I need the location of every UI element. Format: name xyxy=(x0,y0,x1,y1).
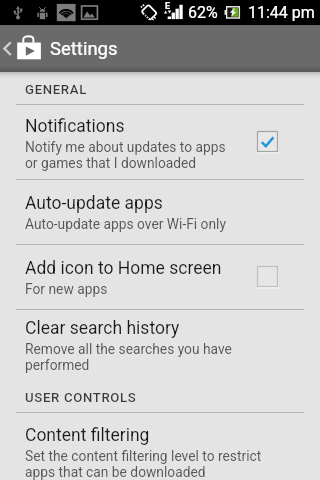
staticText: Add icon to Home screen xyxy=(25,258,222,279)
button[interactable]: Add icon to Home screen xyxy=(0,245,320,309)
staticText: USER CONTROLS xyxy=(25,390,137,405)
button[interactable]: Auto-update apps xyxy=(0,180,320,244)
staticText: 62% xyxy=(188,3,218,22)
button[interactable]: Notifications xyxy=(0,105,320,179)
staticText: Auto-update apps xyxy=(25,193,163,214)
staticText: or games that I downloaded xyxy=(25,155,197,171)
staticText: Clear search history xyxy=(25,318,180,339)
staticText: Remove all the searches you have xyxy=(25,341,232,357)
button[interactable]: Content filtering xyxy=(0,413,320,480)
button[interactable]: Navigate up xyxy=(0,25,46,72)
staticText: performed xyxy=(25,357,90,373)
staticText: 11:44 pm xyxy=(248,3,315,22)
staticText: Notify me about updates to apps xyxy=(25,139,226,155)
staticText: apps that can be downloaded xyxy=(25,464,206,480)
staticText: Set the content filtering level to restr… xyxy=(25,448,262,464)
staticText: For new apps xyxy=(25,281,108,297)
staticText: Auto-update apps over Wi-Fi only xyxy=(25,216,226,232)
staticText: Content filtering xyxy=(25,425,150,446)
staticText: Settings xyxy=(50,38,118,60)
staticText: E xyxy=(165,1,171,12)
staticText: Notifications xyxy=(25,116,125,137)
button[interactable]: Clear search history xyxy=(0,310,320,387)
staticText: GENERAL xyxy=(25,82,87,97)
